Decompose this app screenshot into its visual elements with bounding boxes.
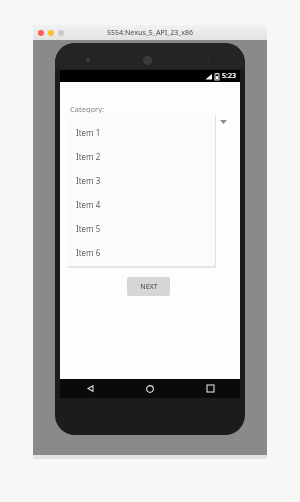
button[interactable]: Item 4 xyxy=(67,192,215,216)
staticText: Item 5 xyxy=(76,223,101,234)
button[interactable]: Zoom xyxy=(58,30,64,36)
staticText: 5554:Nexus_5_API_23_x86 xyxy=(107,28,194,38)
button[interactable]: Home xyxy=(120,379,180,398)
button[interactable]: Item 6 xyxy=(67,240,215,264)
button[interactable]: Back xyxy=(60,379,120,398)
button[interactable]: Open category dropdown xyxy=(216,115,230,129)
staticText: 5:23 xyxy=(222,71,236,81)
button[interactable]: Item 1 xyxy=(67,120,215,144)
staticText: NEXT xyxy=(140,282,158,292)
staticText: Item 4 xyxy=(76,199,101,210)
button[interactable]: Item 3 xyxy=(67,168,215,192)
staticText: Item 6 xyxy=(76,247,101,258)
button[interactable]: NEXT xyxy=(127,277,170,296)
button[interactable]: Item 5 xyxy=(67,216,215,240)
staticText: Category: xyxy=(70,104,104,114)
staticText: Item 1 xyxy=(76,127,101,138)
button[interactable]: Item 2 xyxy=(67,144,215,168)
button[interactable]: Close xyxy=(38,30,44,36)
staticText: Item 2 xyxy=(76,151,101,162)
staticText: Item 3 xyxy=(76,175,101,186)
button[interactable]: Minimize xyxy=(48,30,54,36)
button[interactable]: Recent apps xyxy=(180,379,240,398)
